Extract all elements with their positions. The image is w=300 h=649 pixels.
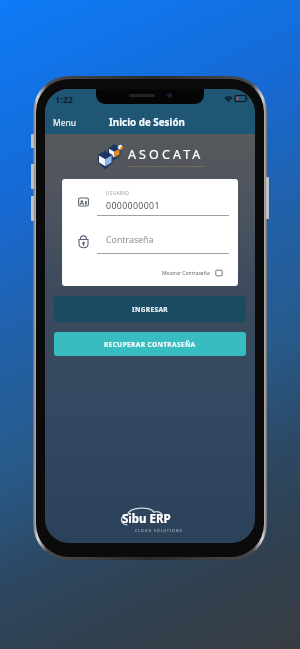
staticText: 0000000001 xyxy=(106,200,160,212)
button[interactable]: Mostrar Contraseña xyxy=(158,265,238,286)
staticText: Contraseña xyxy=(106,234,154,246)
staticText: CLOUD SOLUTIONS xyxy=(135,528,183,533)
staticText: INGRESAR xyxy=(132,305,169,314)
staticText: 1:22 xyxy=(55,93,73,105)
button[interactable]: Menu xyxy=(45,113,85,134)
staticText: ASOCATA xyxy=(128,146,204,163)
staticText: Menu xyxy=(53,117,77,129)
button[interactable]: RECUPERAR CONTRASEÑA xyxy=(54,332,246,356)
staticText: Sibu ERP xyxy=(122,511,171,527)
button[interactable]: INGRESAR xyxy=(54,296,246,322)
staticText: Mostrar Contraseña xyxy=(162,270,210,277)
staticText: Inicio de Sesión xyxy=(109,116,185,129)
staticText: USUARIO xyxy=(106,190,130,196)
staticText: ASOCIACION DE EMPLEADOS DE CATALINA MARK… xyxy=(128,164,205,167)
staticText: RECUPERAR CONTRASEÑA xyxy=(104,340,196,349)
